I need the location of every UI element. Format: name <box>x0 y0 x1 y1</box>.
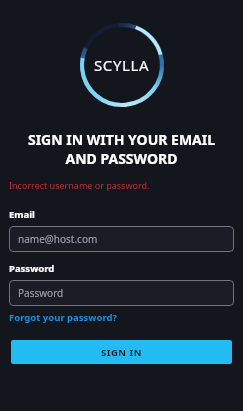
button[interactable]: Password <box>9 280 234 306</box>
staticText: SCYLLA <box>94 55 150 75</box>
staticText: Password <box>18 286 64 300</box>
staticText: Email <box>9 208 35 221</box>
staticText: Password <box>9 262 55 275</box>
button[interactable]: Forgot your password? <box>9 310 117 325</box>
staticText: Incorrect username or password. <box>9 179 243 191</box>
staticText: name@host.com <box>18 232 98 246</box>
button[interactable]: SIGN IN <box>11 340 232 364</box>
staticText: SIGN IN <box>101 346 142 359</box>
button[interactable]: name@host.com <box>9 226 234 252</box>
staticText: Forgot your password? <box>9 311 117 324</box>
staticText: SIGN IN WITH YOUR EMAIL AND PASSWORD <box>14 130 229 168</box>
